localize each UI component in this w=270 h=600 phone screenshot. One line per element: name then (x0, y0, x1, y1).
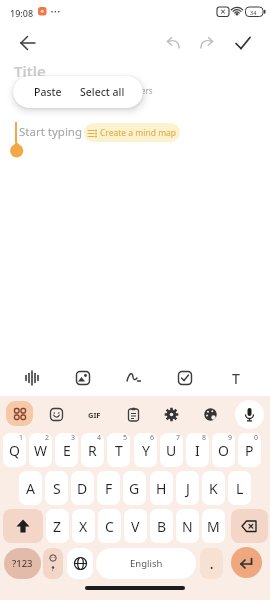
staticText: U (166, 441, 177, 460)
staticText: X (79, 517, 88, 536)
button[interactable]: E (55, 433, 78, 467)
staticText: Start typing (19, 124, 83, 140)
staticText: V (131, 517, 140, 536)
staticText: Create a mind map (100, 127, 177, 139)
staticText: A (26, 479, 35, 498)
button[interactable]: K (202, 471, 225, 505)
button[interactable]: English (96, 548, 196, 579)
staticText: Y (142, 441, 150, 460)
staticText: Q (9, 441, 20, 460)
button[interactable] (157, 400, 186, 429)
button[interactable]: M (202, 509, 225, 543)
button[interactable]: Paste (27, 76, 69, 108)
staticText: 34 (250, 9, 257, 16)
staticText: 19:08 (10, 7, 34, 19)
button[interactable] (3, 509, 43, 543)
button[interactable] (231, 547, 262, 578)
button[interactable] (43, 548, 63, 579)
staticText: 1 (19, 433, 24, 443)
button[interactable] (171, 364, 199, 392)
button[interactable]: . (200, 548, 223, 579)
button[interactable]: F (97, 471, 120, 505)
button[interactable]: Z (46, 509, 69, 543)
button[interactable]: I (186, 433, 209, 467)
button[interactable] (67, 548, 93, 579)
staticText: G (129, 479, 140, 498)
button[interactable]: Create a mind map (84, 123, 180, 142)
button[interactable]: U (160, 433, 183, 467)
staticText: B (157, 517, 167, 536)
staticText: C (105, 517, 114, 536)
button[interactable]: G (123, 471, 146, 505)
staticText: 2 (45, 433, 50, 443)
staticText: L (236, 479, 244, 498)
staticText: 0 (254, 433, 259, 443)
staticText: E (63, 441, 71, 460)
staticText: P (245, 441, 254, 460)
staticText: ?123 (12, 557, 33, 570)
staticText: Paste (34, 85, 62, 99)
staticText: Z (53, 517, 62, 536)
staticText: T (115, 441, 123, 460)
button[interactable]: L (228, 471, 251, 505)
button[interactable]: T (107, 433, 130, 467)
button[interactable]: J (176, 471, 199, 505)
staticText: 5 (123, 433, 128, 443)
button[interactable] (120, 364, 148, 392)
staticText: O (218, 441, 229, 460)
button[interactable]: P (238, 433, 261, 467)
button[interactable] (159, 29, 187, 57)
button[interactable] (231, 509, 268, 543)
button[interactable]: D (71, 471, 94, 505)
button[interactable] (196, 400, 225, 429)
staticText: J (186, 479, 190, 498)
button[interactable]: N (176, 509, 199, 543)
button[interactable]: ?123 (4, 548, 41, 579)
button[interactable]: X (72, 509, 95, 543)
button[interactable]: R (81, 433, 104, 467)
button[interactable]: Q (3, 433, 26, 467)
button[interactable] (69, 364, 97, 392)
staticText: Title (14, 61, 46, 81)
staticText: 9 (228, 433, 233, 443)
button[interactable]: V (124, 509, 147, 543)
staticText: 8 (202, 433, 207, 443)
button[interactable] (119, 400, 148, 429)
button[interactable] (235, 400, 264, 429)
staticText: 4 (97, 433, 102, 443)
staticText: D (77, 479, 88, 498)
button[interactable]: Y (134, 433, 157, 467)
staticText: 6 (150, 433, 155, 443)
staticText: W (34, 441, 48, 460)
button[interactable]: GIF (80, 400, 109, 429)
button[interactable]: H (150, 471, 173, 505)
button[interactable] (193, 29, 221, 57)
button[interactable]: S (45, 471, 68, 505)
staticText: I (195, 441, 200, 460)
staticText: 7 (176, 433, 181, 443)
button[interactable]: B (150, 509, 173, 543)
button[interactable]: C (98, 509, 121, 543)
staticText: R (88, 441, 97, 460)
button[interactable]: W (29, 433, 52, 467)
button[interactable]: T (222, 364, 250, 392)
button[interactable] (18, 364, 46, 392)
staticText: ers (141, 85, 153, 96)
button[interactable] (6, 401, 33, 426)
staticText: T (232, 369, 240, 388)
button[interactable]: O (212, 433, 235, 467)
staticText: Select all (80, 85, 125, 99)
button[interactable] (42, 400, 71, 429)
staticText: 3 (71, 433, 76, 443)
staticText: F (105, 479, 113, 498)
button[interactable] (228, 29, 256, 57)
staticText: N (182, 517, 193, 536)
staticText: S (53, 479, 61, 498)
staticText: GIF (88, 410, 101, 420)
button[interactable]: Select all (69, 76, 135, 108)
staticText: K (209, 479, 218, 498)
button[interactable]: A (19, 471, 42, 505)
staticText: M (207, 517, 220, 536)
button[interactable] (10, 29, 38, 57)
staticText: . (210, 556, 214, 572)
